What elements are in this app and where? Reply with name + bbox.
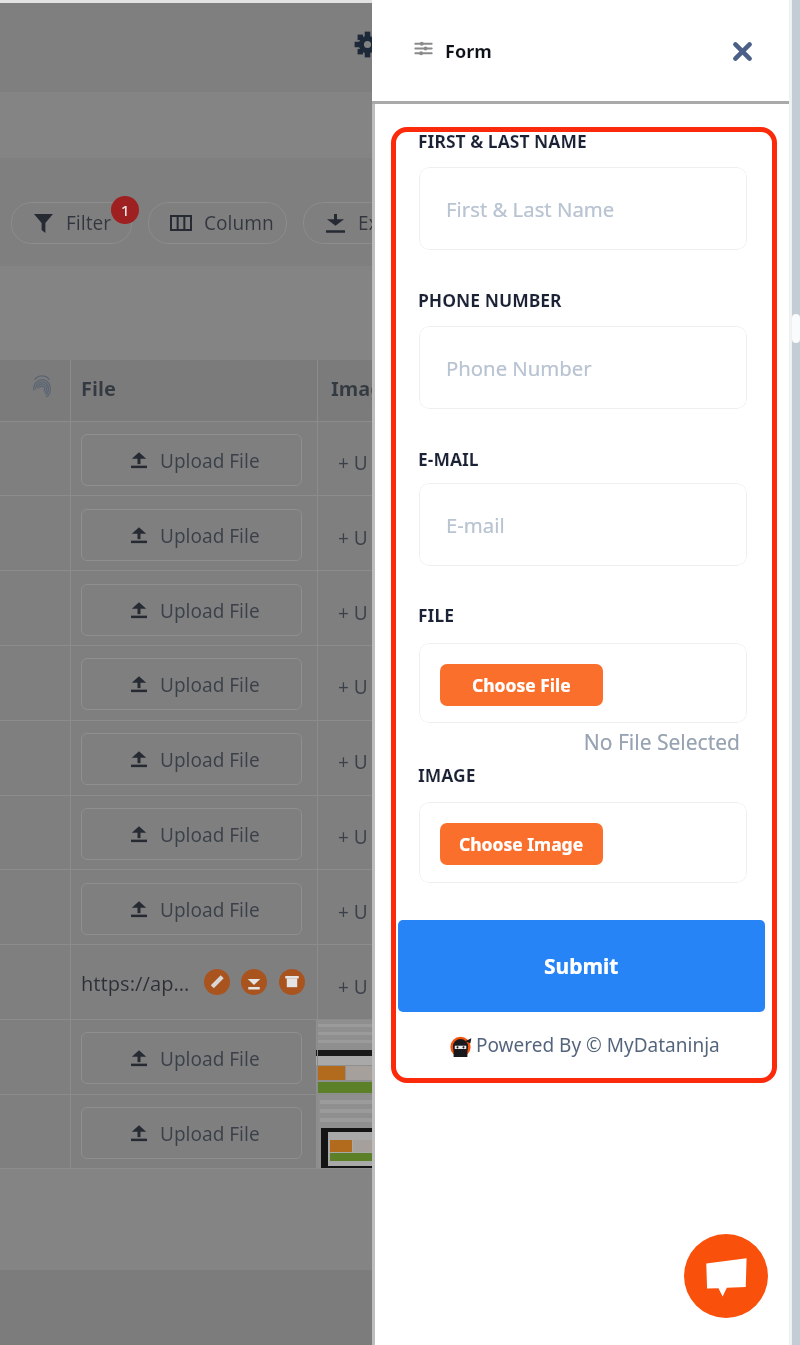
button[interactable]: Upload File	[81, 584, 302, 636]
staticText: + U	[338, 974, 368, 1000]
button[interactable]: Filter	[11, 202, 132, 244]
button[interactable]: Submit	[398, 920, 765, 1012]
staticText: Export	[358, 210, 417, 236]
button[interactable]: Upload File	[81, 1032, 302, 1084]
staticText: + U	[338, 749, 368, 775]
button[interactable]: Upload File	[81, 434, 302, 486]
staticText: File	[81, 375, 116, 402]
staticText: Submit	[544, 952, 619, 981]
staticText: Column	[204, 210, 274, 236]
staticText: https://ap…	[81, 970, 190, 997]
staticText: Upload File	[160, 448, 260, 474]
button[interactable]: Close	[720, 29, 764, 73]
button[interactable]: Download	[241, 969, 267, 995]
button[interactable]: E-mail	[419, 483, 747, 566]
button[interactable]: Upload File	[81, 509, 302, 561]
staticText: No File Selected	[419, 728, 740, 757]
staticText: + U	[338, 674, 368, 700]
staticText: + U	[338, 824, 368, 850]
staticText: Upload File	[160, 1121, 260, 1147]
button[interactable]: Upload File	[81, 883, 302, 935]
button[interactable]: Choose Image	[440, 823, 603, 865]
button[interactable]: Upload File	[81, 808, 302, 860]
staticText: Phone Number	[446, 354, 592, 382]
staticText: Upload File	[160, 1046, 260, 1072]
staticText: IMAGE	[418, 763, 476, 787]
staticText: + U	[338, 525, 368, 551]
staticText: FIRST & LAST NAME	[418, 129, 587, 153]
staticText: Choose Image	[459, 832, 584, 856]
staticText: Upload File	[160, 897, 260, 923]
staticText: Choose File	[472, 673, 571, 697]
staticText: + U	[338, 450, 368, 476]
staticText: PHONE NUMBER	[418, 288, 562, 312]
staticText: Upload File	[160, 523, 260, 549]
staticText: Upload File	[160, 598, 260, 624]
button[interactable]: Open chat	[684, 1234, 768, 1318]
button[interactable]: First & Last Name	[419, 167, 747, 250]
staticText: Upload File	[160, 822, 260, 848]
button[interactable]: Upload File	[81, 658, 302, 710]
staticText: First & Last Name	[446, 195, 615, 223]
button[interactable]: Phone Number	[419, 326, 747, 409]
button[interactable]: Column	[148, 202, 287, 244]
staticText: E-mail	[446, 511, 505, 539]
staticText: 1	[121, 200, 130, 220]
button[interactable]: Upload File	[81, 1107, 302, 1159]
staticText: + U	[338, 899, 368, 925]
staticText: Upload File	[160, 747, 260, 773]
staticText: Powered By © MyDataninja	[476, 1032, 720, 1058]
staticText: + U	[338, 600, 368, 626]
staticText: FILE	[418, 603, 454, 627]
staticText: E-MAIL	[418, 447, 479, 471]
button[interactable]: Export	[303, 202, 433, 244]
staticText: Upload File	[160, 672, 260, 698]
button[interactable]: Upload File	[81, 733, 302, 785]
button[interactable]: Edit	[204, 969, 230, 995]
button[interactable]: Delete	[279, 969, 305, 995]
staticText: Filter	[66, 210, 112, 236]
button[interactable]: Choose File	[440, 664, 603, 706]
staticText: Image	[331, 375, 395, 402]
staticText: Form	[445, 39, 492, 64]
